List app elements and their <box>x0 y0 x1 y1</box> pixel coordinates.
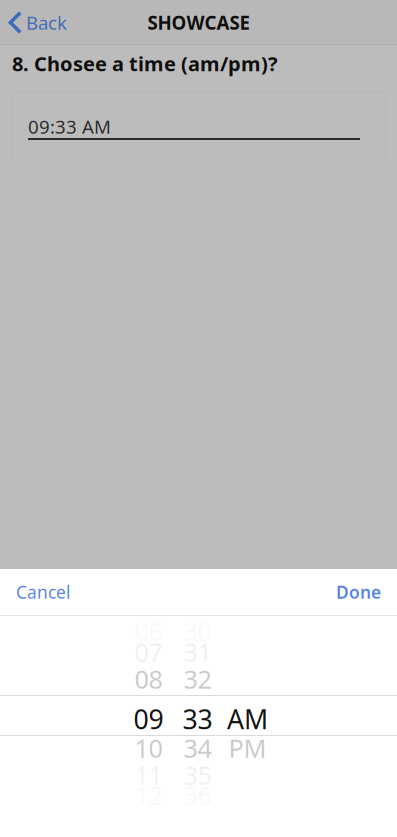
staticText: Back <box>26 10 67 35</box>
staticText: 31 <box>183 635 211 669</box>
staticText: 35 <box>183 758 211 792</box>
staticText: 07 <box>134 635 162 669</box>
button[interactable]: Back <box>0 0 77 45</box>
button[interactable]: Time picker, 09:33 AM <box>0 616 397 837</box>
staticText: SHOWCASE <box>147 10 249 35</box>
staticText: Cancel <box>16 580 70 603</box>
button[interactable]: Cancel <box>0 569 84 614</box>
staticText: PM <box>228 731 266 765</box>
staticText: 11 <box>134 758 162 792</box>
staticText: 8. Chosee a time (am/pm)? <box>12 50 278 77</box>
staticText: 33 <box>182 701 212 737</box>
staticText: 09:33 AM <box>28 114 111 139</box>
staticText: 10 <box>134 731 162 765</box>
staticText: AM <box>227 701 268 737</box>
staticText: 36 <box>183 778 211 812</box>
staticText: 34 <box>183 731 211 765</box>
staticText: 06 <box>134 614 162 648</box>
staticText: Done <box>336 580 381 603</box>
button[interactable]: 09:33 AM <box>11 92 386 166</box>
staticText: 09 <box>133 701 163 737</box>
staticText: 32 <box>183 662 211 696</box>
staticText: 08 <box>134 662 162 696</box>
button[interactable]: Done <box>322 569 397 614</box>
staticText: 30 <box>183 614 211 648</box>
